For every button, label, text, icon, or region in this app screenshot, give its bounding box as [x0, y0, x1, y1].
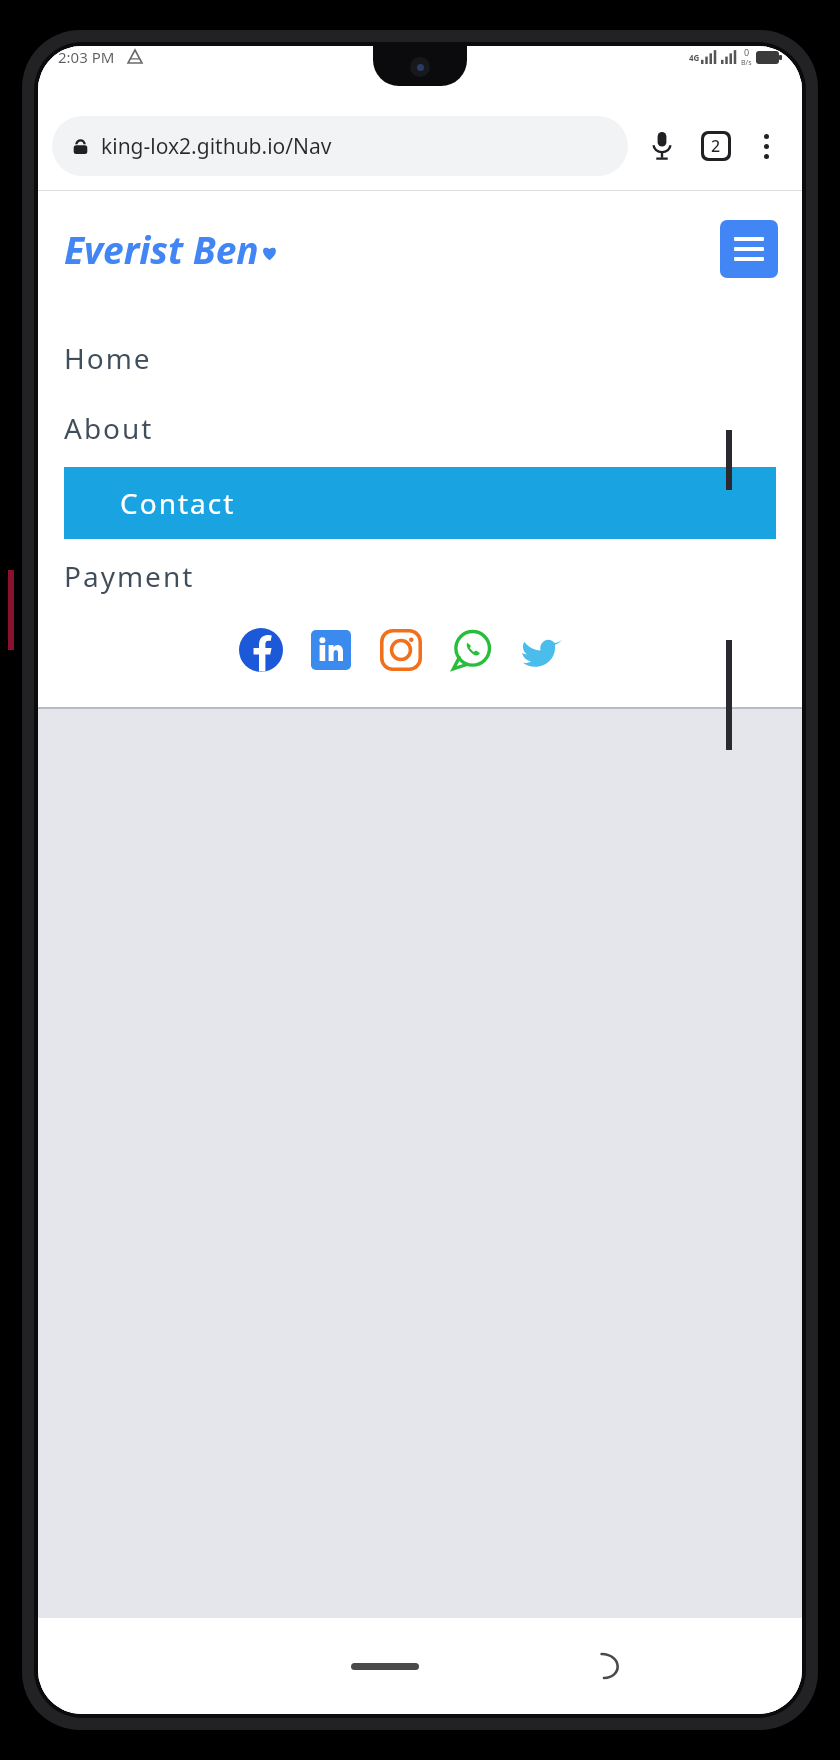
button[interactable]: Payment [38, 557, 802, 595]
staticText: Everist Ben [64, 224, 259, 274]
staticText: B/s [741, 58, 752, 68]
staticText: About [64, 409, 154, 447]
button[interactable]: Everist Ben [64, 224, 278, 274]
button[interactable]: Home [38, 339, 802, 377]
button[interactable]: Contact [64, 467, 776, 539]
button[interactable]: WhatsApp [448, 627, 494, 673]
staticText: 0 [744, 46, 750, 58]
button[interactable]: Home [347, 1646, 423, 1686]
button[interactable]: Instagram [378, 627, 424, 673]
button[interactable]: king-lox2.github.io/Nav [52, 116, 628, 176]
button[interactable]: About [38, 409, 802, 447]
button[interactable]: Facebook [238, 627, 284, 673]
button[interactable]: Back [582, 1638, 638, 1694]
button[interactable]: LinkedIn [308, 627, 354, 673]
button[interactable]: Tabs: 2 [692, 122, 740, 170]
staticText: 4G [689, 52, 700, 63]
staticText: 2:03 PM [58, 47, 115, 67]
staticText: king-lox2.github.io/Nav [101, 132, 332, 161]
staticText: 2 [711, 135, 721, 157]
staticText: Payment [64, 557, 195, 595]
button[interactable]: More options [744, 124, 788, 168]
staticText: Contact [120, 484, 236, 522]
button[interactable]: Voice search [638, 122, 686, 170]
button[interactable]: Twitter [518, 627, 564, 673]
staticText: Home [64, 339, 152, 377]
button[interactable]: Menu [720, 220, 778, 278]
